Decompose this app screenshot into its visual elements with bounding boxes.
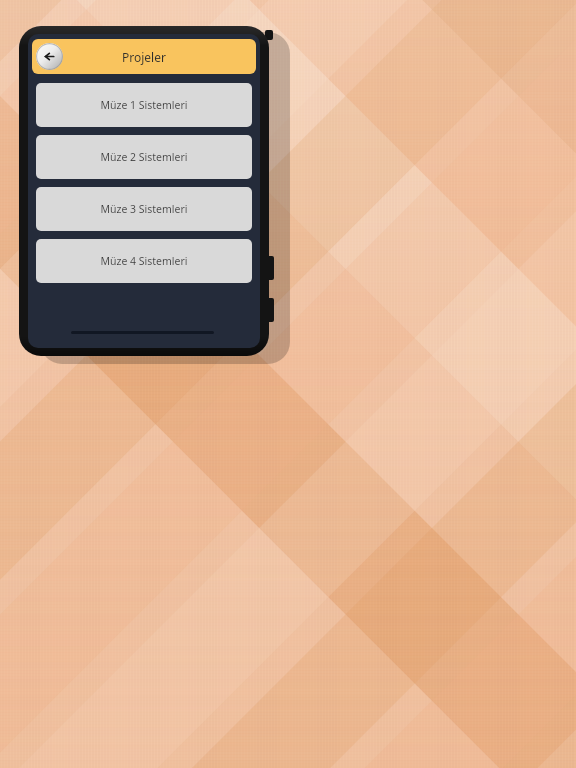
button[interactable]: Geri: [36, 43, 63, 70]
staticText: Müze 1 Sistemleri: [100, 98, 188, 112]
button[interactable]: Müze 2 Sistemleri: [36, 135, 252, 179]
staticText: Müze 2 Sistemleri: [100, 150, 188, 164]
staticText: Müze 4 Sistemleri: [100, 254, 188, 268]
staticText: Müze 3 Sistemleri: [100, 202, 188, 216]
button[interactable]: Müze 1 Sistemleri: [36, 83, 252, 127]
button[interactable]: Müze 4 Sistemleri: [36, 239, 252, 283]
button[interactable]: Müze 3 Sistemleri: [36, 187, 252, 231]
staticText: Projeler: [122, 49, 166, 65]
